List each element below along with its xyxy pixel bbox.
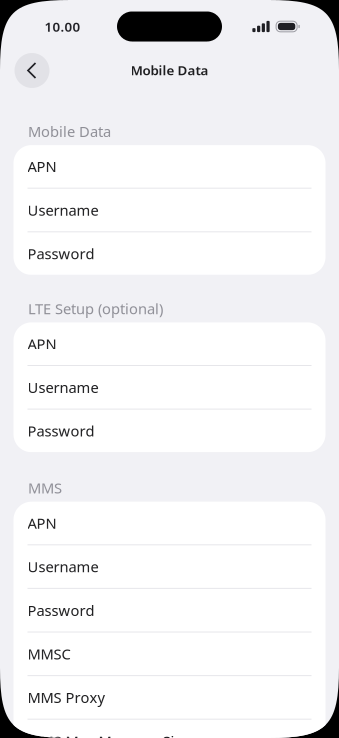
staticText: APN: [27, 513, 56, 533]
button[interactable]: APN: [13, 322, 325, 365]
button[interactable]: MMSC: [13, 632, 325, 675]
staticText: MMSC: [27, 644, 70, 664]
staticText: Username: [27, 200, 98, 220]
staticText: Password: [27, 244, 94, 263]
staticText: Username: [27, 557, 98, 576]
staticText: APN: [27, 157, 56, 176]
button[interactable]: APN: [13, 502, 325, 544]
staticText: Password: [27, 421, 94, 441]
staticText: MMS Proxy: [27, 688, 104, 707]
staticText: LTE Setup (optional): [28, 299, 163, 318]
staticText: MMS Max Message Size: [27, 731, 189, 738]
button[interactable]: Password: [13, 232, 325, 275]
button[interactable]: Username: [13, 366, 325, 409]
staticText: Mobile Data: [28, 122, 111, 141]
staticText: Password: [27, 600, 94, 620]
staticText: Mobile Data: [130, 61, 208, 79]
button[interactable]: APN: [13, 145, 325, 188]
button[interactable]: Username: [13, 545, 325, 588]
button[interactable]: MMS Proxy: [13, 676, 325, 719]
staticText: 10.00: [44, 18, 80, 35]
button[interactable]: MMS Max Message Size: [13, 720, 325, 738]
staticText: APN: [27, 334, 56, 353]
staticText: Username: [27, 378, 98, 397]
button[interactable]: Username: [13, 189, 325, 231]
button[interactable]: Back: [14, 53, 49, 88]
button[interactable]: Password: [13, 410, 325, 452]
staticText: MMS: [28, 478, 62, 498]
button[interactable]: Password: [13, 589, 325, 631]
